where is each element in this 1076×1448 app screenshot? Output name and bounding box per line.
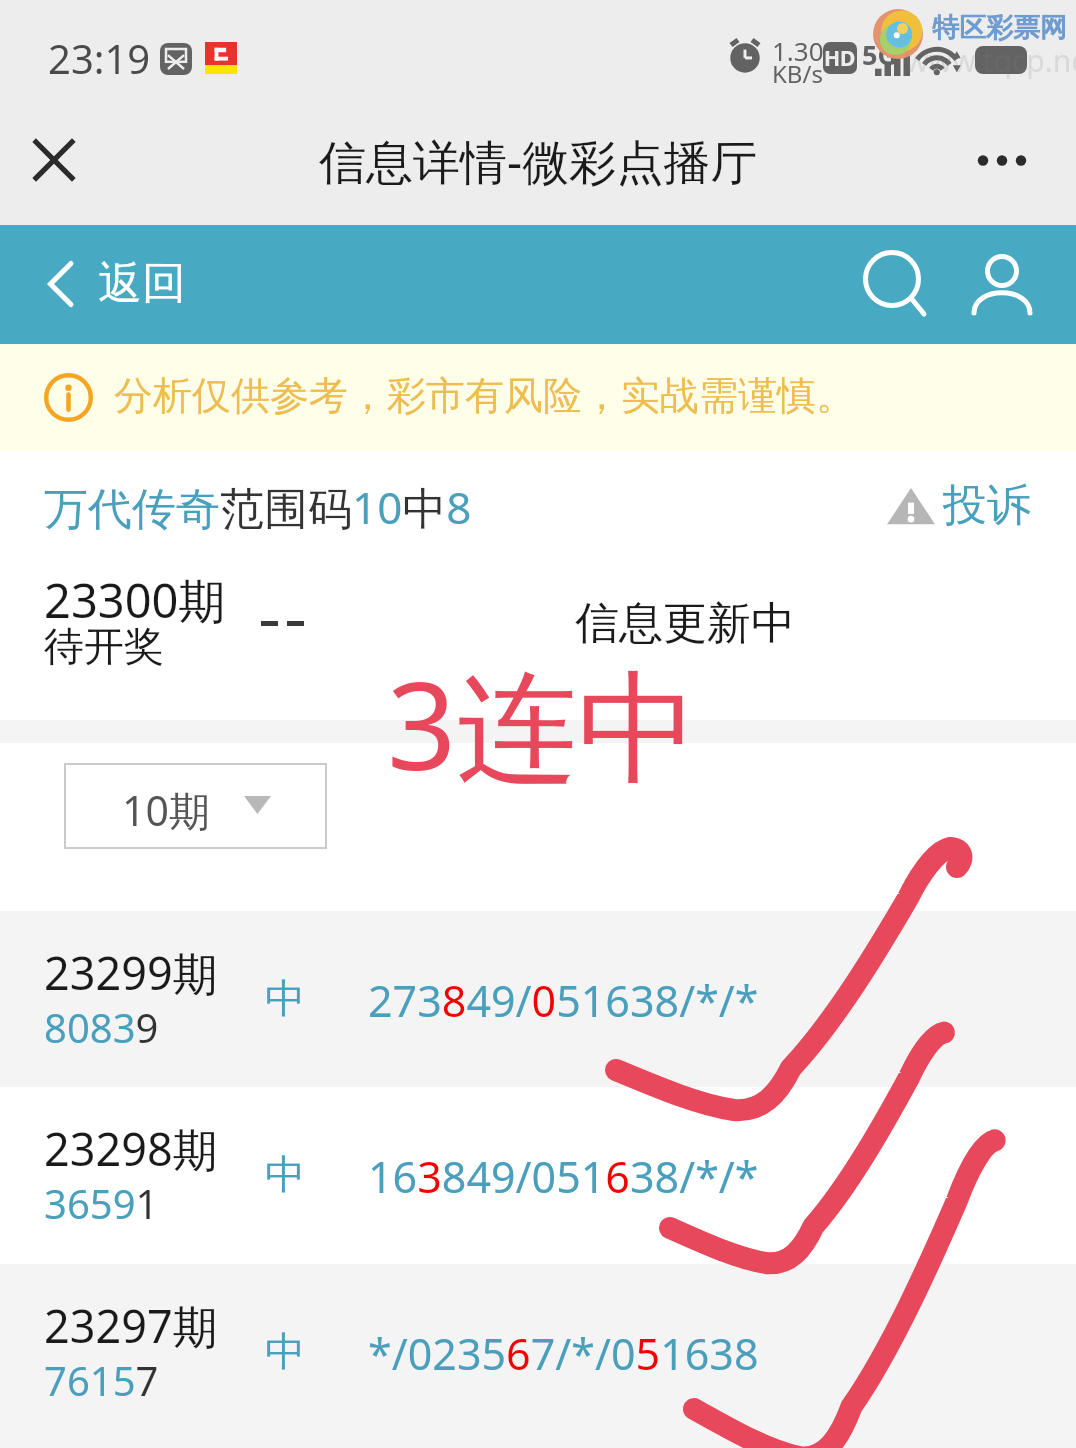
staticText: */023567/*/051638 (368, 1324, 759, 1383)
button[interactable]: Profile (964, 242, 1040, 318)
button[interactable] (0, 1087, 1076, 1263)
staticText: 投诉 (943, 478, 1031, 533)
staticText: 中 (265, 973, 305, 1023)
button[interactable]: 10期 (64, 763, 327, 849)
staticText: 中 (265, 1326, 305, 1376)
staticText: 万代传奇范围码10中8 (44, 477, 472, 537)
staticText: 23300期 (44, 568, 226, 632)
staticText: 中 (265, 1149, 305, 1199)
staticText: 23:19 (48, 31, 151, 85)
button[interactable]: Close (18, 124, 90, 196)
staticText: 80839 (44, 1000, 159, 1054)
staticText: 特区彩票网 (932, 11, 1067, 45)
staticText: 23299期 (44, 942, 218, 1003)
staticText: 163849/051638/*/* (368, 1147, 759, 1206)
staticText: 36591 (44, 1176, 159, 1230)
staticText: 3连中 (387, 641, 699, 806)
staticText: 信息详情-微彩点播厅 (319, 129, 758, 193)
staticText: 273849/051638/*/* (368, 971, 759, 1030)
staticText: 待开奖 (44, 621, 164, 671)
button[interactable]: More options (960, 126, 1028, 194)
button[interactable] (0, 911, 1076, 1087)
staticText: 1.30 (772, 33, 824, 68)
staticText: KB/s (772, 57, 823, 90)
staticText: 10期 (122, 782, 210, 838)
staticText: 23298期 (44, 1118, 218, 1179)
staticText: www.tqcp.net (905, 40, 1076, 81)
staticText: 76157 (44, 1353, 159, 1407)
staticText: HD (824, 44, 856, 73)
staticText: 分析仅供参考，彩市有风险，实战需谨慎。 (114, 371, 855, 420)
staticText: 返回 (98, 256, 186, 311)
button[interactable] (0, 1264, 1076, 1440)
staticText: 5G (862, 36, 897, 73)
staticText: 23297期 (44, 1295, 218, 1356)
staticText: 信息更新中 (575, 596, 795, 651)
button[interactable]: Search (855, 242, 931, 318)
button[interactable]: 投诉 (885, 478, 1031, 533)
button[interactable]: 返回 (48, 256, 186, 311)
